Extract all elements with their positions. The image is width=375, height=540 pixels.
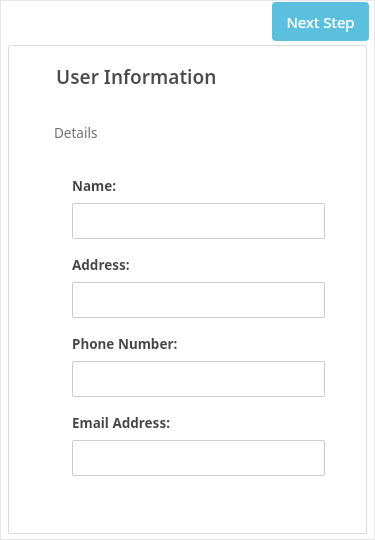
staticText: Phone Number:	[72, 335, 178, 353]
staticText: Details	[54, 124, 98, 142]
staticText: Email Address:	[72, 414, 170, 432]
button[interactable]: Next Step	[272, 2, 369, 41]
button[interactable]	[72, 282, 325, 318]
button[interactable]	[72, 203, 325, 239]
button[interactable]	[72, 361, 325, 397]
staticText: User Information	[56, 64, 217, 90]
staticText: Next Step	[286, 12, 355, 32]
staticText: Name:	[72, 177, 117, 195]
button[interactable]	[72, 440, 325, 476]
staticText: Address:	[72, 256, 130, 274]
